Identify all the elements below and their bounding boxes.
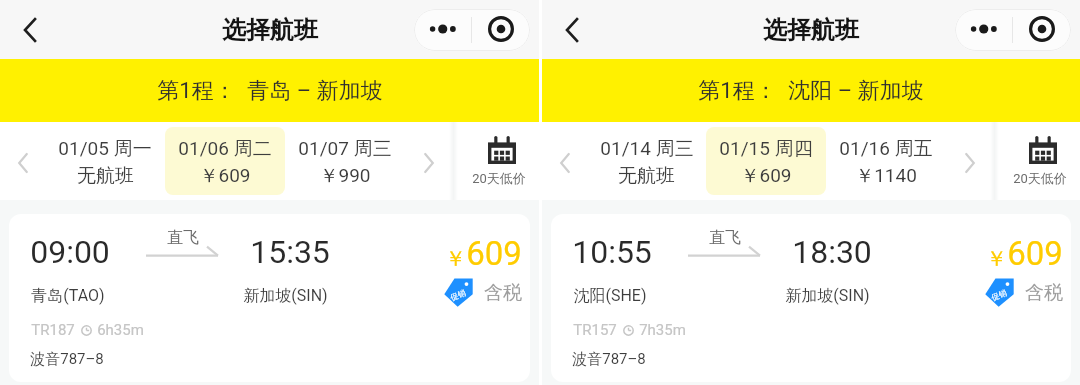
button[interactable]: Back	[554, 12, 590, 48]
staticText: TR187	[31, 321, 75, 339]
staticText: 609	[466, 234, 522, 273]
button[interactable]: Previous day	[542, 122, 587, 200]
staticText: 01/06 周二	[178, 137, 272, 161]
button[interactable]: Close mini program	[1013, 9, 1071, 51]
staticText: 波音787–8	[30, 350, 104, 369]
staticText: 第1程：	[157, 77, 236, 105]
button[interactable]: More options	[414, 9, 471, 51]
staticText: 青岛(TAO)	[31, 286, 105, 306]
staticText: ￥	[445, 246, 466, 272]
staticText: 01/15 周四	[719, 137, 813, 161]
staticText: ￥990	[319, 164, 371, 188]
button[interactable]: 01/16 周五	[826, 127, 946, 195]
staticText: 01/16 周五	[839, 137, 933, 161]
staticText: 促销	[990, 287, 1008, 303]
button[interactable]: Back	[12, 12, 48, 48]
button[interactable]: 01/15 周四	[706, 127, 826, 195]
staticText: TR157	[573, 321, 617, 339]
staticText: 无航班	[618, 164, 675, 188]
button[interactable]: More options	[955, 9, 1012, 51]
staticText: 01/14 周三	[600, 137, 694, 161]
staticText: 沈阳(SHE)	[573, 286, 647, 306]
staticText: 7h35m	[639, 321, 686, 339]
staticText: 直飞	[167, 228, 199, 248]
staticText: 选择航班	[763, 15, 859, 45]
button[interactable]: Next day	[946, 122, 990, 200]
staticText: ￥	[986, 246, 1007, 272]
staticText: 20天低价	[472, 170, 526, 186]
staticText: 第1程：	[698, 77, 777, 105]
button[interactable]: 01/07 周三	[285, 127, 405, 195]
staticText: ￥1140	[855, 164, 917, 188]
staticText: 青岛 – 新加坡	[247, 77, 383, 105]
staticText: 6h35m	[97, 321, 144, 339]
staticText: ￥609	[199, 164, 251, 188]
staticText: 15:35	[250, 233, 330, 271]
staticText: 20天低价	[1013, 170, 1067, 186]
staticText: 新加坡(SIN)	[785, 286, 870, 306]
button[interactable]: Previous day	[0, 122, 45, 200]
staticText: 含税	[1025, 281, 1063, 305]
button[interactable]: 20天低价	[999, 122, 1080, 200]
button[interactable]: 20天低价	[458, 122, 539, 200]
staticText: 10:55	[572, 233, 652, 271]
staticText: 波音787–8	[572, 350, 646, 369]
staticText: 促销	[449, 287, 467, 303]
staticText: 无航班	[77, 164, 134, 188]
button[interactable]: Next day	[405, 122, 449, 200]
button[interactable]: 01/05 周一	[45, 127, 165, 195]
staticText: 18:30	[792, 233, 872, 271]
staticText: 01/07 周三	[298, 137, 392, 161]
button[interactable]: 01/06 周二	[165, 127, 285, 195]
button[interactable]: 01/14 周三	[587, 127, 706, 195]
staticText: 含税	[484, 281, 522, 305]
staticText: 沈阳 – 新加坡	[788, 77, 924, 105]
staticText: ￥609	[740, 164, 792, 188]
staticText: 09:00	[30, 233, 110, 271]
staticText: 选择航班	[222, 15, 318, 45]
staticText: 新加坡(SIN)	[243, 286, 328, 306]
staticText: 直飞	[709, 228, 741, 248]
button[interactable]: 09:00	[9, 214, 530, 382]
button[interactable]: 10:55	[551, 214, 1071, 382]
button[interactable]: Close mini program	[472, 9, 530, 51]
staticText: 01/05 周一	[58, 137, 152, 161]
staticText: 609	[1007, 234, 1063, 273]
